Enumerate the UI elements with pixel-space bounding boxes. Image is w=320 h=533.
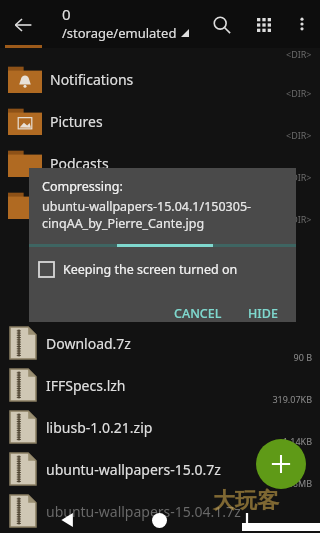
staticText: Keeping the screen turned on [63, 261, 238, 278]
staticText: ubuntu-wallpapers-15.04.1.7z [46, 502, 241, 521]
staticText: <DIR> [286, 87, 312, 99]
button[interactable]: More options [288, 10, 316, 38]
staticText: libusb-1.0.21.zip [46, 418, 153, 437]
staticText: <DIR> [286, 129, 312, 141]
button[interactable]: Back [58, 511, 76, 529]
staticText: Notifications [50, 70, 134, 89]
button[interactable]: IFFSpecs.lzh [0, 364, 320, 406]
staticText: 319.07KB [272, 393, 312, 405]
staticText: ubuntu-wallpapers-15.04.1/150305-cinqAA_… [42, 198, 288, 231]
button[interactable]: Back [6, 8, 40, 42]
staticText: Ringtones [50, 196, 117, 215]
button[interactable]: Notifications [0, 58, 320, 100]
button[interactable]: Podcasts [0, 142, 320, 184]
button[interactable]: libusb-1.0.21.zip [0, 406, 320, 448]
button[interactable]: Pictures [0, 100, 320, 142]
button[interactable]: Ringtones [0, 184, 320, 226]
button[interactable]: ubuntu-wallpapers-15.0.7z [0, 448, 320, 490]
staticText: 2.36MB [280, 477, 312, 489]
button[interactable]: Keeping the screen turned on [39, 261, 238, 278]
button[interactable]: Add [256, 439, 306, 489]
staticText: 大玩客 [213, 487, 279, 515]
staticText: <DIR> [286, 171, 312, 183]
staticText: <DIR> [286, 48, 312, 58]
button[interactable]: HIDE [242, 301, 284, 322]
button[interactable]: ubuntu-wallpapers-15.04.1.7z [0, 490, 320, 532]
staticText: 1.14KB [282, 435, 312, 447]
button[interactable]: Home [150, 511, 168, 529]
button[interactable]: CANCEL [168, 301, 228, 322]
staticText: HIDE [248, 305, 278, 318]
button[interactable]: 0 [62, 4, 189, 42]
button[interactable]: Recent apps [238, 511, 256, 529]
staticText: /storage/emulated [62, 24, 177, 42]
button[interactable]: Search [207, 10, 237, 40]
staticText: Download.7z [46, 334, 131, 353]
button[interactable]: Download.7z [0, 322, 320, 364]
staticText: Podcasts [50, 154, 109, 173]
staticText: Pictures [50, 112, 103, 131]
staticText: IFFSpecs.lzh [46, 376, 126, 395]
staticText: ubuntu-wallpapers-15.0.7z [46, 460, 221, 479]
staticText: CANCEL [174, 305, 222, 318]
button[interactable]: View mode [249, 10, 279, 40]
staticText: 0 [62, 4, 71, 24]
staticText: Compressing: [42, 178, 123, 195]
staticText: <DIR> [286, 213, 312, 225]
staticText: 90 B [293, 351, 312, 363]
